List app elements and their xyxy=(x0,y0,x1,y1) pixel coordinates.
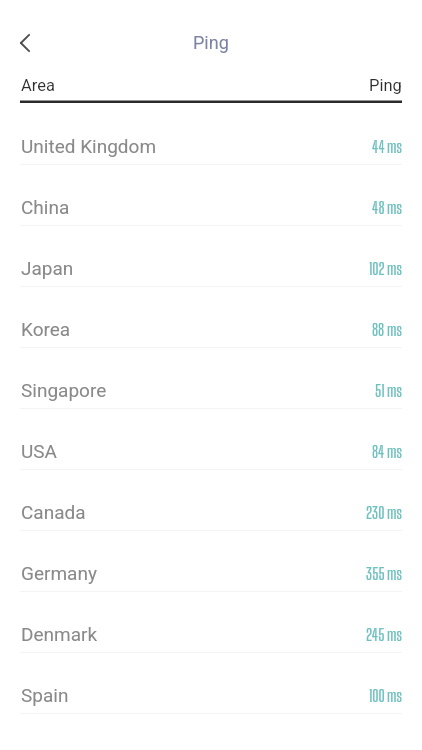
staticText: 230 xyxy=(366,503,385,522)
staticText: Korea xyxy=(21,318,71,340)
button[interactable]: United Kingdom xyxy=(0,104,422,165)
staticText: China xyxy=(21,196,70,218)
staticText: 84 xyxy=(372,442,385,461)
staticText: ms xyxy=(387,442,402,461)
button[interactable]: Japan xyxy=(0,226,422,287)
button[interactable]: China xyxy=(0,165,422,226)
staticText: ms xyxy=(387,564,402,583)
staticText: United Kingdom xyxy=(21,135,157,157)
staticText: USA xyxy=(21,440,57,462)
staticText: Japan xyxy=(21,257,74,279)
staticText: 355 xyxy=(366,564,385,583)
staticText: 88 xyxy=(372,320,385,339)
staticText: Canada xyxy=(21,501,86,523)
button[interactable]: Denmark xyxy=(0,592,422,653)
staticText: 100 xyxy=(369,686,385,705)
staticText: 48 xyxy=(372,198,385,217)
staticText: ms xyxy=(387,137,402,156)
staticText: ms xyxy=(387,503,402,522)
staticText: ms xyxy=(387,686,402,705)
button[interactable]: USA xyxy=(0,409,422,470)
staticText: 102 xyxy=(369,259,385,278)
staticText: Spain xyxy=(21,684,69,706)
button[interactable]: Spain xyxy=(0,653,422,714)
staticText: ms xyxy=(387,259,402,278)
button[interactable]: Singapore xyxy=(0,348,422,409)
staticText: Singapore xyxy=(21,379,107,401)
staticText: Ping xyxy=(193,32,229,53)
staticText: 245 xyxy=(366,625,385,644)
staticText: ms xyxy=(387,198,402,217)
staticText: ms xyxy=(387,625,402,644)
staticText: 44 xyxy=(372,137,385,156)
staticText: Area xyxy=(21,76,55,95)
staticText: 51 xyxy=(375,381,385,400)
button[interactable]: Germany xyxy=(0,531,422,592)
button[interactable]: Back xyxy=(7,25,43,61)
staticText: Denmark xyxy=(21,623,98,645)
staticText: Germany xyxy=(21,562,97,584)
staticText: ms xyxy=(387,320,402,339)
button[interactable]: Canada xyxy=(0,470,422,531)
button[interactable]: Korea xyxy=(0,287,422,348)
staticText: ms xyxy=(387,381,402,400)
staticText: Ping xyxy=(369,76,402,95)
